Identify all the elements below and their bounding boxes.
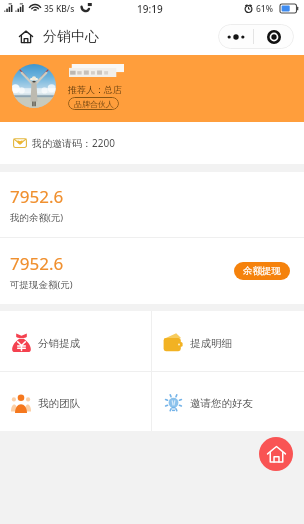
button[interactable]: Close <box>254 24 294 49</box>
button[interactable]: 我的团队 <box>0 372 151 431</box>
button[interactable]: More <box>218 24 253 49</box>
staticText: 我的余额(元) <box>10 211 64 224</box>
staticText: 邀请您的好友 <box>190 397 253 410</box>
staticText: 可提现金额(元) <box>10 278 73 291</box>
staticText: 19:19 <box>137 2 163 16</box>
button[interactable]: 余额提现 <box>234 262 290 280</box>
staticText: 7952.6 <box>10 252 64 275</box>
button[interactable]: 分销提成 <box>0 311 151 371</box>
staticText: 品牌合伙人 <box>74 99 114 109</box>
staticText: 分销中心 <box>43 28 99 46</box>
button[interactable]: Home <box>259 437 293 471</box>
staticText: 我的团队 <box>38 397 80 410</box>
button[interactable]: Home <box>18 29 34 45</box>
staticText: 余额提现 <box>243 265 281 277</box>
staticText: 分销提成 <box>38 337 80 350</box>
staticText: 提成明细 <box>190 337 232 350</box>
staticText: 7952.6 <box>10 185 64 208</box>
staticText: 61% <box>256 3 273 15</box>
button[interactable]: 提成明细 <box>152 311 304 371</box>
staticText: 我的邀请码：2200 <box>32 136 115 150</box>
button[interactable]: 邀请您的好友 <box>152 372 304 431</box>
button[interactable]: 我的邀请码：2200 <box>0 122 304 164</box>
staticText: 推荐人：总店 <box>68 84 122 95</box>
staticText: 35 KB/s <box>44 3 75 15</box>
